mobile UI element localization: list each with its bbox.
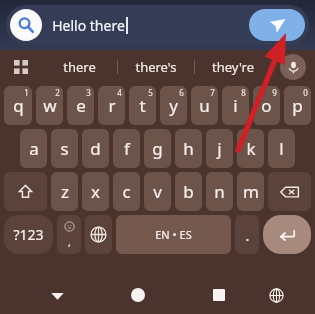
staticText: w xyxy=(43,94,57,117)
staticText: ?123 xyxy=(13,225,44,244)
staticText: i xyxy=(233,94,238,117)
button[interactable]: c xyxy=(113,172,140,211)
staticText: g xyxy=(152,137,163,160)
button[interactable]: Space xyxy=(116,215,231,254)
staticText: m xyxy=(243,180,259,203)
button[interactable]: u xyxy=(191,86,218,125)
button[interactable]: Backspace xyxy=(268,172,311,211)
staticText: 6 xyxy=(179,87,184,98)
button[interactable]: Home xyxy=(112,276,164,314)
staticText: j xyxy=(217,137,222,160)
button[interactable]: Change language xyxy=(85,215,112,254)
button[interactable]: Search xyxy=(6,5,309,45)
staticText: . xyxy=(245,225,250,245)
button[interactable]: f xyxy=(113,129,140,168)
button[interactable]: n xyxy=(206,172,233,211)
button[interactable]: g xyxy=(144,129,171,168)
staticText: s xyxy=(60,137,69,160)
button[interactable]: w xyxy=(36,86,63,125)
staticText: x xyxy=(91,180,100,203)
staticText: l xyxy=(279,137,284,160)
button[interactable]: Back xyxy=(31,276,83,314)
staticText: 3 xyxy=(86,87,91,98)
button[interactable]: they're xyxy=(195,50,271,84)
button[interactable]: o xyxy=(253,86,280,125)
staticText: Hello there xyxy=(52,16,125,35)
staticText: there's xyxy=(135,58,177,76)
staticText: 5 xyxy=(148,87,153,98)
button[interactable]: Toolbar xyxy=(0,50,42,84)
button[interactable]: l xyxy=(268,129,295,168)
staticText: u xyxy=(199,94,210,117)
button[interactable]: there xyxy=(42,50,117,84)
button[interactable]: v xyxy=(144,172,171,211)
staticText: they're xyxy=(212,58,254,76)
button[interactable]: Emoji and comma xyxy=(57,215,81,254)
staticText: y xyxy=(169,94,178,117)
staticText: 0 xyxy=(303,87,308,98)
button[interactable]: a xyxy=(20,129,47,168)
button[interactable]: Recents xyxy=(193,276,245,314)
button[interactable]: Send xyxy=(249,9,305,41)
staticText: o xyxy=(261,94,272,117)
staticText: , xyxy=(68,234,71,249)
button[interactable]: Search xyxy=(10,9,42,41)
button[interactable]: h xyxy=(175,129,202,168)
staticText: 9 xyxy=(272,87,277,98)
staticText: EN • ES xyxy=(155,227,192,242)
staticText: r xyxy=(108,94,116,117)
staticText: a xyxy=(29,137,39,160)
staticText: c xyxy=(122,180,131,203)
button[interactable]: q xyxy=(4,86,32,125)
button[interactable]: Voice input xyxy=(280,54,306,80)
staticText: e xyxy=(76,94,86,117)
button[interactable]: . xyxy=(235,215,259,254)
button[interactable]: t xyxy=(129,86,156,125)
staticText: d xyxy=(90,137,101,160)
staticText: n xyxy=(214,180,225,203)
staticText: b xyxy=(183,180,194,203)
button[interactable]: b xyxy=(175,172,202,211)
staticText: 1 xyxy=(24,87,29,98)
button[interactable]: k xyxy=(237,129,264,168)
button[interactable]: ?123 xyxy=(4,215,53,254)
button[interactable]: s xyxy=(51,129,78,168)
button[interactable]: z xyxy=(51,172,78,211)
button[interactable]: j xyxy=(206,129,233,168)
button[interactable]: m xyxy=(237,172,264,211)
staticText: v xyxy=(153,180,162,203)
button[interactable]: d xyxy=(82,129,109,168)
staticText: there xyxy=(63,58,96,76)
staticText: 8 xyxy=(241,87,246,98)
button[interactable]: there's xyxy=(118,50,194,84)
button[interactable]: i xyxy=(222,86,249,125)
staticText: z xyxy=(61,180,69,203)
button[interactable]: x xyxy=(82,172,109,211)
button[interactable]: y xyxy=(160,86,187,125)
staticText: f xyxy=(124,137,130,160)
button[interactable]: r xyxy=(98,86,125,125)
staticText: q xyxy=(13,94,24,117)
button[interactable]: Shift xyxy=(4,172,47,211)
staticText: p xyxy=(292,94,303,117)
staticText: t xyxy=(139,94,146,117)
button[interactable]: p xyxy=(284,86,311,125)
staticText: 7 xyxy=(210,87,215,98)
staticText: k xyxy=(246,137,256,160)
staticText: h xyxy=(183,137,194,160)
button[interactable]: Enter xyxy=(263,215,311,254)
staticText: 4 xyxy=(117,87,122,98)
staticText: 2 xyxy=(55,87,60,98)
button[interactable]: e xyxy=(67,86,94,125)
button[interactable]: Switch keyboard xyxy=(250,276,302,314)
